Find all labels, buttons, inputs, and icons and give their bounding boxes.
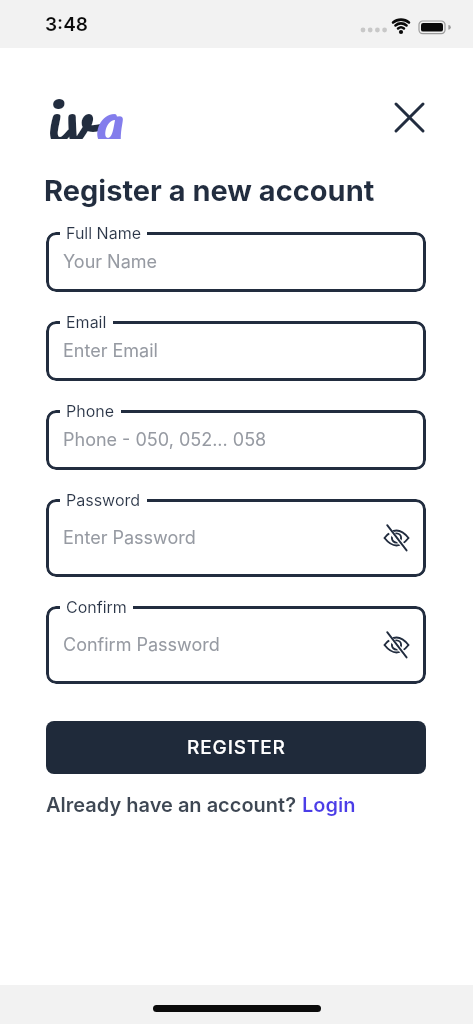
- staticText: Enter Email: [63, 340, 158, 362]
- staticText: Confirm Password: [63, 634, 220, 656]
- button[interactable]: Phone - 050, 052... 058: [46, 410, 426, 470]
- button[interactable]: REGISTER: [46, 721, 426, 774]
- staticText: Already have an account?: [46, 793, 302, 817]
- staticText: Enter Password: [63, 527, 196, 549]
- staticText: Confirm: [66, 597, 127, 616]
- button[interactable]: Login: [302, 793, 356, 817]
- staticText: Your Name: [63, 251, 158, 273]
- staticText: Email: [66, 312, 107, 331]
- button[interactable]: Confirm Password: [46, 606, 426, 684]
- staticText: Password: [66, 490, 141, 509]
- button[interactable]: Enter Email: [46, 321, 426, 381]
- staticText: Phone: [66, 401, 115, 420]
- staticText: iva: [47, 61, 126, 139]
- button[interactable]: Enter Password: [46, 499, 426, 577]
- button[interactable]: [387, 95, 431, 139]
- staticText: REGISTER: [187, 736, 286, 759]
- staticText: Phone - 050, 052... 058: [63, 429, 267, 451]
- staticText: Register a new account: [44, 173, 375, 208]
- staticText: Full Name: [66, 223, 141, 242]
- staticText: 3:48: [45, 13, 88, 36]
- button[interactable]: Your Name: [46, 232, 426, 292]
